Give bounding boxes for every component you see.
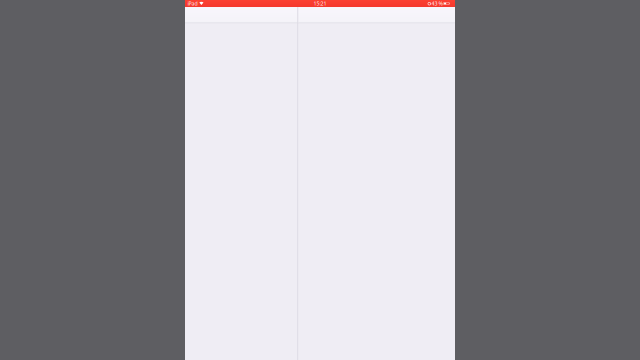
staticText: 15:21 <box>313 0 326 7</box>
staticText: iPad <box>188 0 198 7</box>
staticText: 43 % <box>431 0 442 7</box>
